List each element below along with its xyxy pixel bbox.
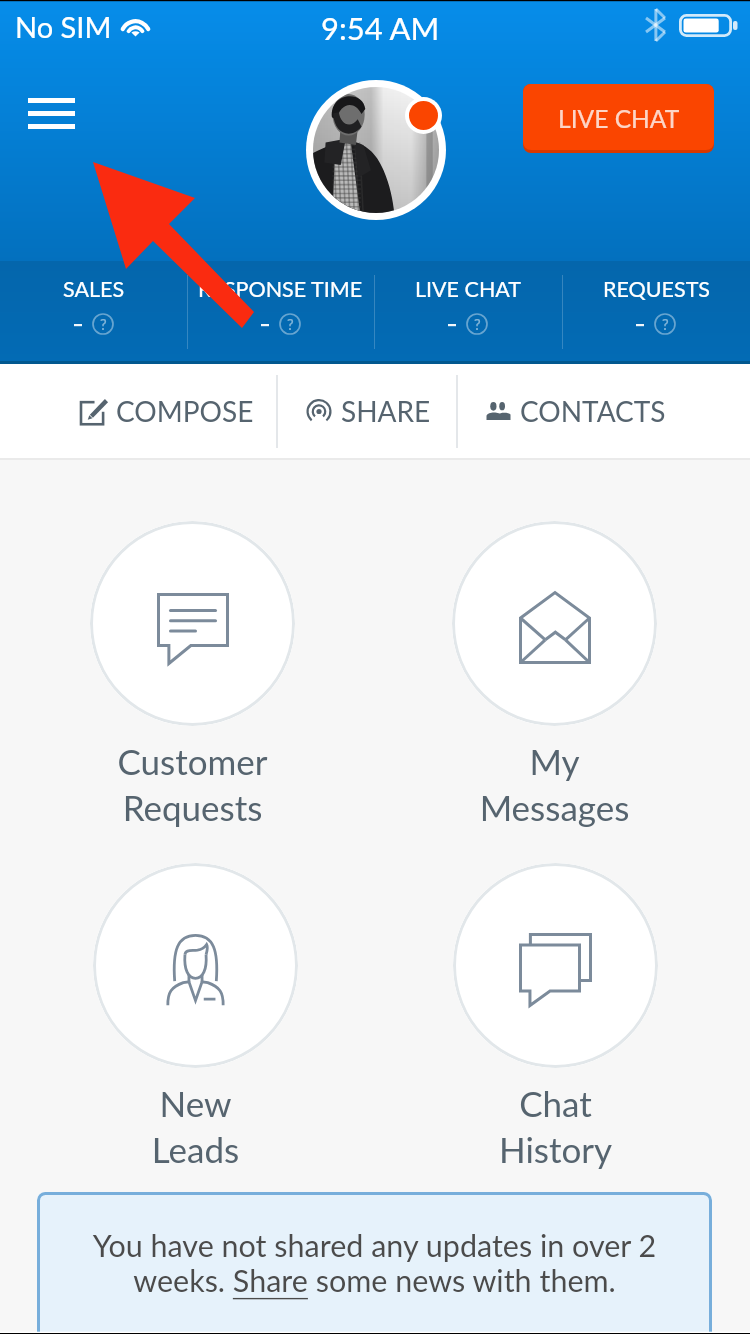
button[interactable]: New Leads — [93, 863, 298, 1170]
button[interactable]: LIVE CHAT — [374, 261, 562, 364]
button[interactable]: You have not shared any updates in over … — [37, 1192, 712, 1334]
staticText: ? — [287, 315, 294, 333]
button[interactable]: Chat History — [453, 863, 658, 1170]
staticText: SALES — [63, 276, 125, 302]
button[interactable]: Customer Requests — [90, 521, 295, 828]
button[interactable]: My Messages — [452, 521, 657, 828]
staticText: LIVE CHAT — [558, 104, 680, 134]
staticText: ? — [662, 315, 669, 333]
button[interactable]: COMPOSE — [81, 364, 276, 458]
staticText: SHARE — [341, 394, 431, 428]
staticText: No SIM — [15, 9, 112, 44]
staticText: My Messages — [452, 740, 657, 828]
button[interactable]: Profile photo — [306, 80, 446, 220]
staticText: 9:54 AM — [321, 9, 440, 46]
staticText: REQUESTS — [603, 276, 710, 302]
staticText: Customer Requests — [90, 740, 295, 828]
button[interactable]: RESPONSE TIME — [187, 261, 374, 364]
staticText: CONTACTS — [520, 394, 666, 428]
button[interactable]: SHARE — [278, 364, 456, 458]
button[interactable]: CONTACTS — [458, 364, 666, 458]
staticText: You have not shared any updates in over … — [65, 1227, 684, 1298]
staticText: COMPOSE — [116, 394, 254, 428]
staticText: New Leads — [93, 1082, 298, 1170]
button[interactable]: REQUESTS — [562, 261, 750, 364]
staticText: ? — [474, 315, 481, 333]
staticText: RESPONSE TIME — [198, 276, 363, 302]
staticText: LIVE CHAT — [415, 276, 522, 302]
staticText: Chat History — [453, 1082, 658, 1170]
staticText: ? — [100, 315, 107, 333]
button[interactable]: SALES — [0, 261, 187, 364]
button[interactable]: Open navigation menu — [8, 78, 94, 148]
button[interactable]: LIVE CHAT — [523, 84, 714, 153]
